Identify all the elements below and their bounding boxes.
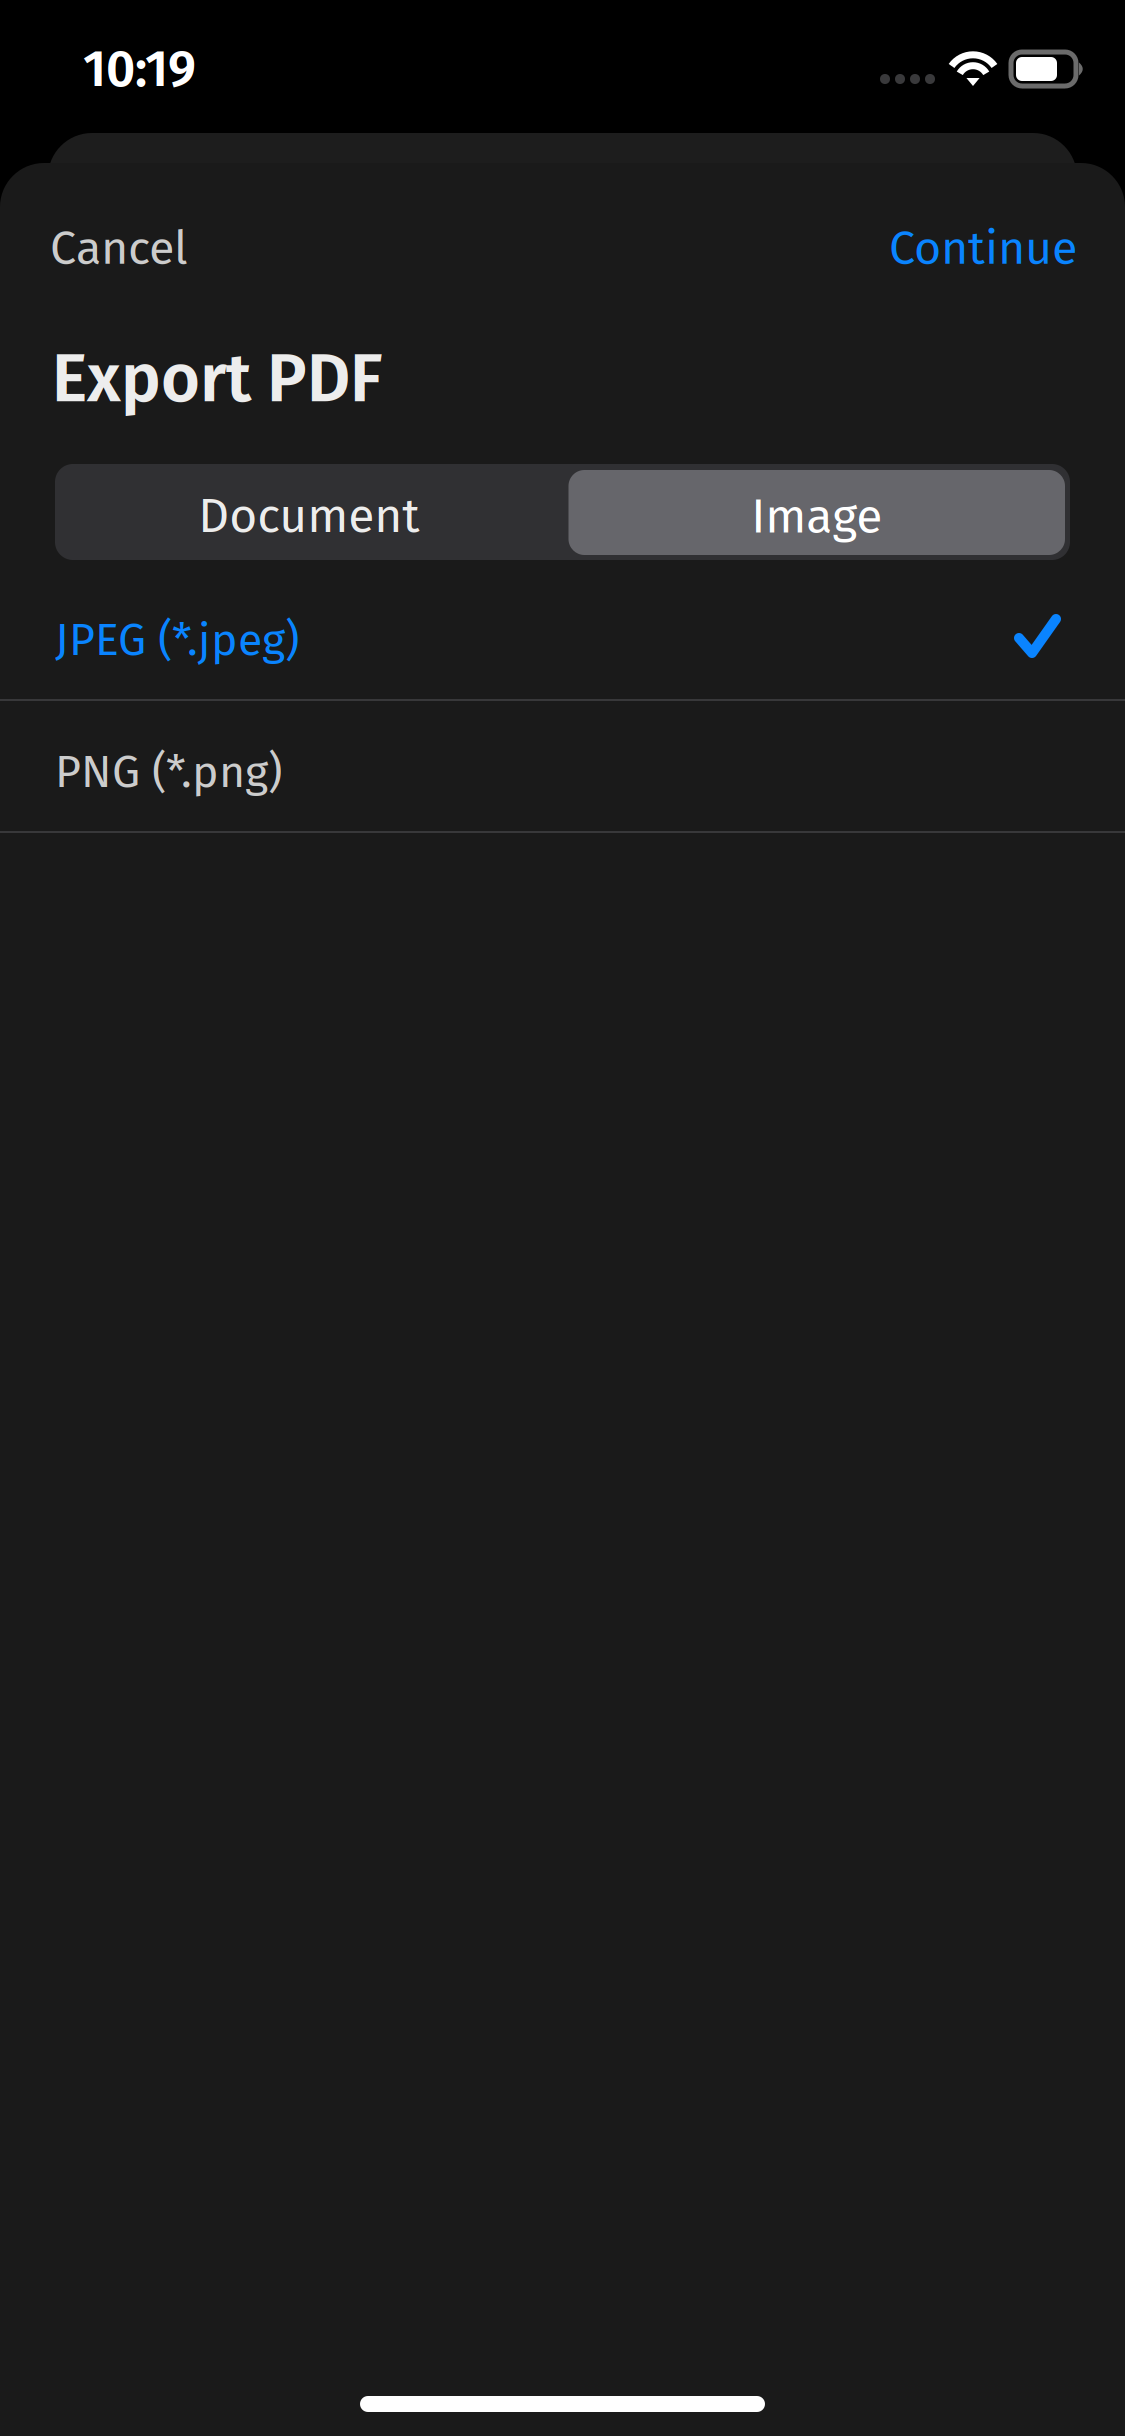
button[interactable]: Image	[562, 464, 1070, 560]
staticText: Cancel	[50, 220, 188, 276]
staticText: PNG (*.png)	[55, 745, 282, 799]
staticText: JPEG (*.jpeg)	[55, 613, 299, 667]
button[interactable]: PNG (*.png)	[0, 701, 1125, 833]
staticText: Image	[751, 488, 882, 545]
button[interactable]: JPEG (*.jpeg)	[0, 569, 1125, 701]
button[interactable]: Continue	[889, 188, 1077, 308]
button[interactable]: Document	[55, 464, 562, 560]
staticText: 10:19	[83, 39, 196, 99]
staticText: Export PDF	[52, 339, 383, 419]
staticText: Continue	[889, 220, 1077, 276]
button[interactable]: Cancel	[50, 188, 188, 308]
staticText: Document	[198, 487, 419, 545]
